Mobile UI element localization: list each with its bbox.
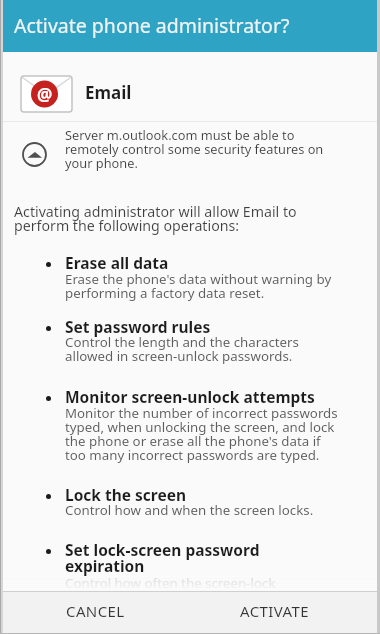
staticText: Email <box>85 81 132 104</box>
staticText: Activating administrator will allow Emai… <box>14 202 297 235</box>
staticText: Control how and when the screen locks. <box>65 501 367 519</box>
button[interactable]: Activate phone administrator? <box>0 0 380 52</box>
staticText: Set password rules <box>65 316 370 337</box>
staticText: Monitor screen-unlock attempts <box>65 386 370 407</box>
staticText: Lock the screen <box>65 484 370 505</box>
staticText: Monitor the number of incorrect password… <box>65 404 367 464</box>
button[interactable]: CANCEL <box>0 592 190 634</box>
staticText: ACTIVATE <box>240 601 310 621</box>
staticText: @ <box>37 83 53 106</box>
staticText: Control how often the screen-lock <box>65 574 367 592</box>
staticText: Server m.outlook.com must be able to rem… <box>65 126 324 172</box>
staticText: Set lock-screen password expiration <box>65 539 370 577</box>
staticText: Erase all data <box>65 252 370 273</box>
button[interactable]: @ <box>0 66 380 118</box>
staticText: Erase the phone's data without warning b… <box>65 270 367 302</box>
staticText: Control the length and the characters al… <box>65 333 367 365</box>
button[interactable]: ACTIVATE <box>190 592 380 634</box>
staticText: Activate phone administrator? <box>14 12 290 39</box>
staticText: CANCEL <box>66 601 125 621</box>
